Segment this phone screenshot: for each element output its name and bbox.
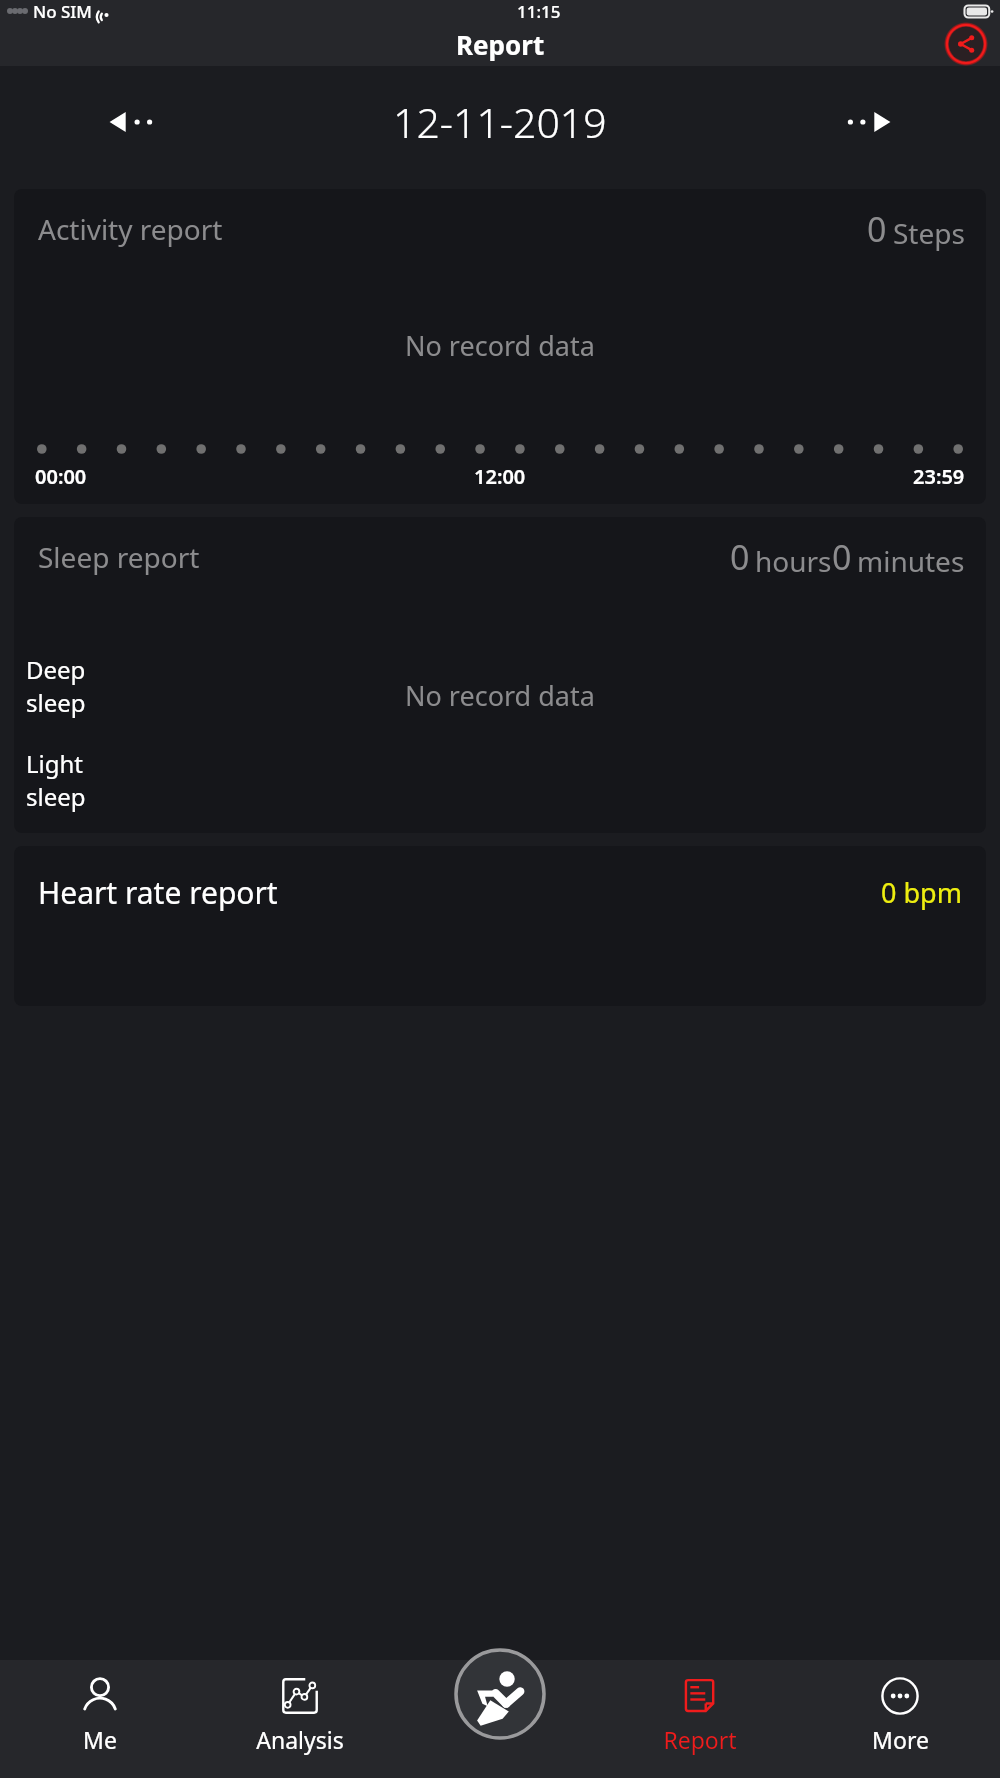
staticText: 11:15 [517,0,561,22]
button[interactable]: More [800,1660,1000,1778]
button[interactable]: Previous day [108,102,160,142]
button[interactable]: Heart rate report [14,846,986,1006]
staticText: Me [83,1724,117,1755]
staticText: sleep [26,780,86,813]
staticText: 12-11-2019 [393,94,607,150]
staticText: Light [26,747,84,780]
staticText: No record data [405,327,595,364]
staticText: Steps [893,214,965,252]
button[interactable]: Share [942,22,990,66]
staticText: minutes [857,542,965,580]
staticText: 12:00 [474,463,526,490]
staticText: sleep [26,686,86,719]
staticText: 00:00 [35,463,87,490]
button[interactable]: Analysis [200,1660,400,1778]
staticText: 23:59 [913,463,965,490]
staticText: Report [456,27,545,62]
staticText: 0 [867,206,887,252]
staticText: Deep [26,653,86,686]
staticText: More [872,1724,929,1755]
button[interactable]: Sleep report [14,517,986,833]
staticText: No SIM [33,0,92,22]
staticText: 0 bpm [881,874,962,911]
staticText: Heart rate report [38,872,278,913]
button[interactable]: Start workout [454,1648,546,1740]
staticText: Sleep report [38,538,200,576]
button[interactable]: Me [0,1660,200,1778]
button[interactable]: Report [600,1660,800,1778]
staticText: Analysis [256,1724,344,1755]
button[interactable]: Activity report [14,189,986,504]
staticText: 0 [832,534,852,580]
button[interactable]: Next day [840,102,892,142]
staticText: 0 [730,534,750,580]
staticText: Activity report [38,210,223,248]
staticText: No record data [405,677,595,714]
staticText: hours [755,542,832,580]
staticText: Report [663,1724,737,1755]
